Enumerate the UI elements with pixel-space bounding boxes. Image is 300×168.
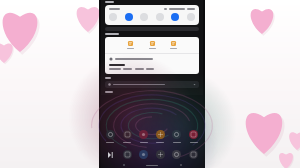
button[interactable] [105, 91, 113, 93]
button[interactable]: Play [106, 150, 115, 159]
button[interactable]: App 3 [139, 130, 148, 139]
button[interactable]: App 2 [123, 130, 132, 139]
button[interactable]: Quick setting 1 [109, 13, 117, 21]
button[interactable]: Quick setting 2 [125, 13, 133, 21]
button[interactable]: Recents [179, 163, 183, 167]
button[interactable]: Quick setting 4 [156, 13, 164, 21]
button[interactable]: Dock app 4 [172, 150, 181, 159]
button[interactable]: App 4 [156, 130, 165, 139]
button[interactable]: Back [122, 163, 126, 167]
button[interactable]: Quick setting 3 [140, 13, 148, 21]
button[interactable]: App 6 [189, 130, 198, 139]
button[interactable]: Dock app 1 [123, 150, 132, 159]
button[interactable]: App 1 [106, 130, 115, 139]
button[interactable]: Dock app 2 [139, 150, 148, 159]
button[interactable] [105, 54, 199, 74]
button[interactable]: Shortcut 2 [148, 40, 157, 50]
button[interactable]: Dock app 5 [189, 150, 198, 159]
button[interactable]: Quick setting 6 [187, 13, 195, 21]
button[interactable]: Shortcut 3 [169, 40, 178, 50]
button[interactable]: Home [146, 165, 158, 166]
button[interactable]: Dock app 3 [156, 150, 165, 159]
button[interactable]: App 5 [172, 130, 181, 139]
button[interactable] [105, 81, 199, 88]
button[interactable]: Shortcut 1 [126, 40, 135, 50]
button[interactable]: Quick setting 5 [171, 13, 179, 21]
